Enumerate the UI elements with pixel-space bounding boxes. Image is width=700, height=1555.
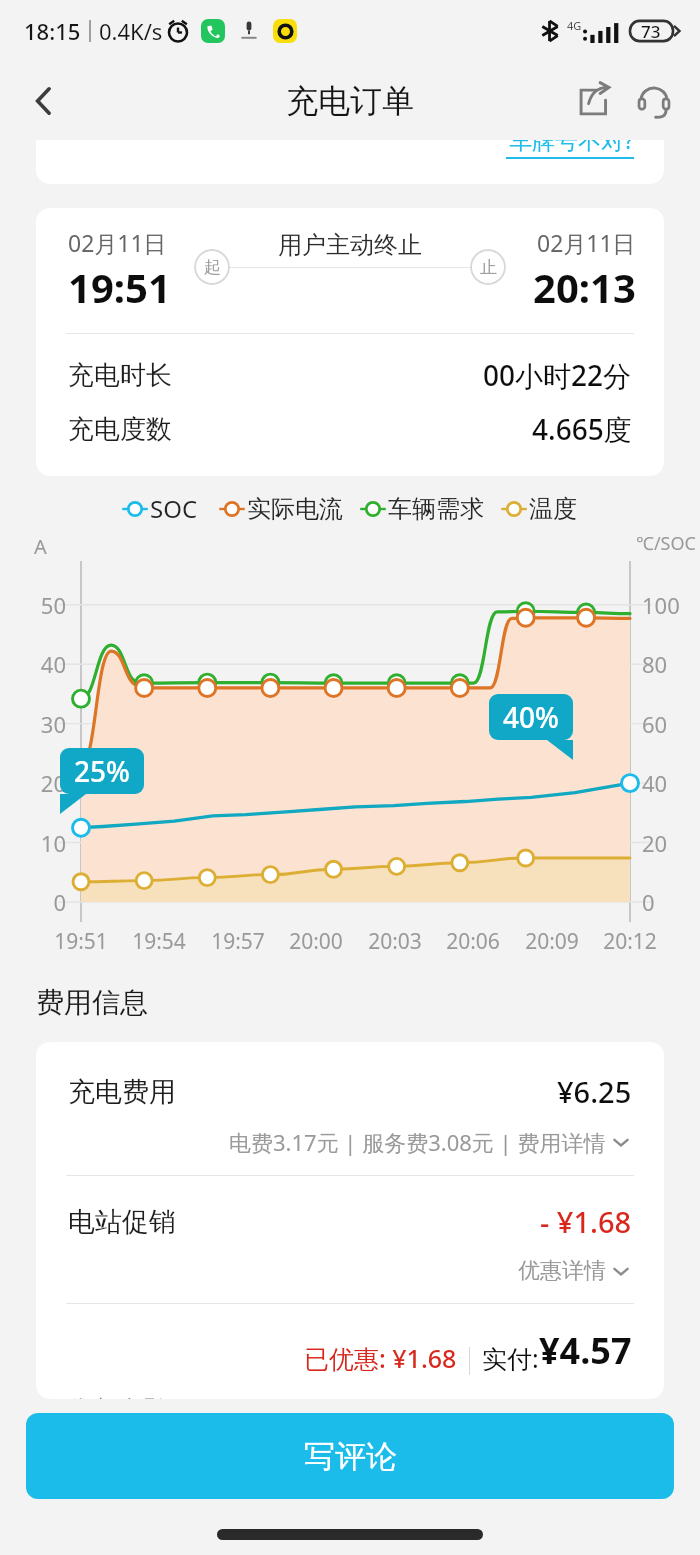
staticText: 止 xyxy=(480,257,497,278)
staticText: 充电费用 xyxy=(68,1075,176,1109)
staticText: 02月11日 xyxy=(537,227,636,258)
staticText: A xyxy=(34,533,47,560)
staticText: 已优惠: ¥1.68 xyxy=(304,1341,457,1375)
staticText: 80 xyxy=(642,649,668,679)
staticText: 20:00 xyxy=(276,927,356,956)
staticText: 4G xyxy=(567,18,582,33)
staticText: 20:03 xyxy=(355,927,435,956)
staticText: 30 xyxy=(22,709,66,739)
staticText: 起 xyxy=(204,257,221,278)
button[interactable]: 客服 xyxy=(624,71,684,131)
staticText: 20:06 xyxy=(433,927,513,956)
staticText: 费用信息 xyxy=(36,985,148,1020)
staticText: 20:13 xyxy=(533,260,636,314)
staticText: 实付: xyxy=(482,1341,539,1375)
staticText: 00小时22分 xyxy=(483,356,632,394)
staticText: 20 xyxy=(22,768,66,798)
staticText: 19:51 xyxy=(68,260,171,314)
staticText: 19:54 xyxy=(119,927,199,956)
staticText: 73 xyxy=(641,20,661,43)
staticText: 实际电流 xyxy=(247,494,343,524)
staticText: 0.4K/s xyxy=(99,16,163,46)
staticText: ℃/SOC xyxy=(636,531,696,556)
staticText: 优惠后明细 xyxy=(68,1395,178,1399)
staticText: 19:57 xyxy=(198,927,278,956)
staticText: 用户主动终止 xyxy=(278,230,422,260)
staticText: 车牌号不对? xyxy=(509,140,634,155)
staticText: 02月11日 xyxy=(68,227,167,258)
staticText: 19:51 xyxy=(41,927,121,956)
staticText: 40 xyxy=(22,649,66,679)
button[interactable]: 分享 xyxy=(564,71,624,131)
staticText: 温度 xyxy=(529,494,577,524)
staticText: 充电订单 xyxy=(286,81,414,121)
button[interactable]: 车牌号不对? xyxy=(36,140,664,184)
staticText: 4.665度 xyxy=(532,410,632,448)
staticText: 优惠详情 xyxy=(518,1257,606,1285)
staticText: 10 xyxy=(22,828,66,858)
staticText: 100 xyxy=(642,590,680,620)
staticText: 40% xyxy=(503,698,559,736)
staticText: 50 xyxy=(22,590,66,620)
button[interactable]: 返回 xyxy=(14,71,74,131)
staticText: 25% xyxy=(74,752,130,790)
staticText: 车辆需求 xyxy=(388,494,484,524)
staticText: 0 xyxy=(22,887,66,917)
staticText: 20 xyxy=(642,828,668,858)
staticText: ¥4.57 xyxy=(539,1326,632,1375)
staticText: SOC xyxy=(150,492,198,525)
button[interactable]: 电费3.17元 | 服务费3.08元 | 费用详情 xyxy=(36,1127,632,1157)
staticText: ¥6.25 xyxy=(557,1072,632,1111)
staticText: 20:09 xyxy=(512,927,592,956)
staticText: 60 xyxy=(642,709,668,739)
button[interactable]: 写评论 xyxy=(26,1413,674,1499)
staticText: - ¥1.68 xyxy=(540,1202,632,1241)
staticText: 充电时长 xyxy=(68,359,172,392)
staticText: 充电度数 xyxy=(68,413,172,446)
staticText: 0 xyxy=(642,887,655,917)
button[interactable]: 优惠详情 xyxy=(36,1257,632,1285)
staticText: 40 xyxy=(642,768,668,798)
staticText: 电费3.17元 | 服务费3.08元 | 费用详情 xyxy=(229,1127,606,1157)
staticText: 写评论 xyxy=(304,1437,397,1476)
staticText: 电站促销 xyxy=(68,1205,176,1239)
staticText: 20:12 xyxy=(590,927,670,956)
staticText: 18:15 xyxy=(24,16,81,46)
